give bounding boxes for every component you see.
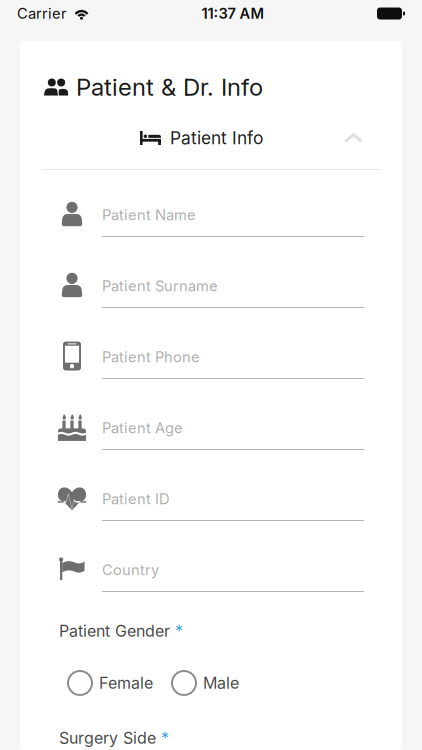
staticText: Patient Info bbox=[170, 127, 263, 148]
staticText: Patient Name bbox=[102, 206, 196, 224]
staticText: Patient Age bbox=[102, 419, 183, 437]
button[interactable]: Patient Phone bbox=[20, 340, 402, 388]
staticText: Patient Phone bbox=[102, 348, 200, 366]
button[interactable]: Patient Age bbox=[20, 411, 402, 459]
staticText: Patient & Dr. Info bbox=[76, 72, 263, 101]
button[interactable]: Patient Info bbox=[20, 128, 402, 148]
staticText: Female bbox=[99, 673, 153, 693]
staticText: Carrier bbox=[17, 5, 67, 22]
button[interactable]: Patient Surname bbox=[20, 269, 402, 317]
staticText: Patient Gender bbox=[59, 621, 170, 641]
button[interactable]: Female bbox=[68, 670, 153, 696]
button[interactable]: Patient Name bbox=[20, 198, 402, 246]
staticText: Country bbox=[102, 561, 159, 579]
staticText: Patient ID bbox=[102, 490, 170, 508]
staticText: Male bbox=[203, 673, 239, 693]
staticText: Patient Surname bbox=[102, 277, 218, 295]
staticText: Surgery Side bbox=[59, 728, 156, 748]
staticText: * bbox=[161, 728, 169, 748]
button[interactable]: Patient ID bbox=[20, 482, 402, 530]
button[interactable]: Male bbox=[172, 670, 239, 696]
staticText: * bbox=[175, 621, 183, 641]
button[interactable]: Country bbox=[20, 553, 402, 601]
staticText: 11:37 AM bbox=[201, 5, 264, 22]
